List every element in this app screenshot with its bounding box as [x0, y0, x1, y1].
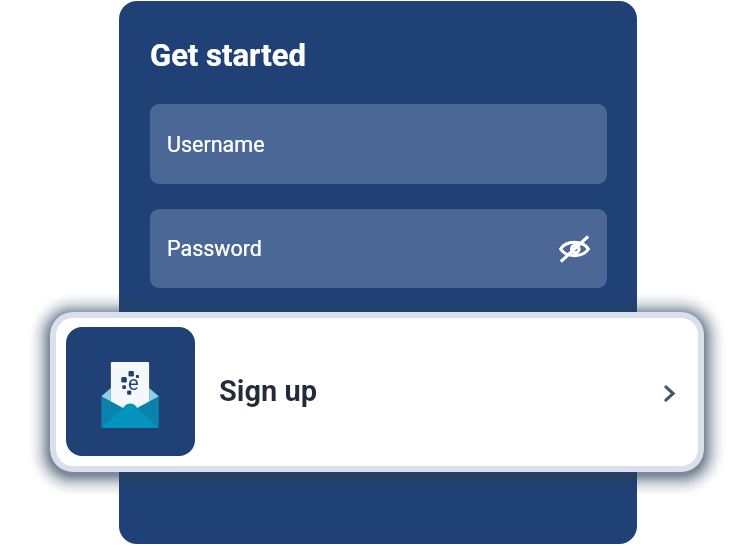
staticText: e	[128, 371, 139, 394]
staticText: Password	[167, 236, 262, 261]
button[interactable]: e	[56, 318, 698, 466]
staticText: Sign up	[219, 374, 318, 408]
staticText: Get started	[150, 37, 306, 73]
button[interactable]: Username	[150, 104, 607, 184]
staticText: Username	[167, 132, 265, 157]
button[interactable]: Hide password	[550, 225, 598, 273]
button[interactable]: Password	[150, 209, 607, 288]
